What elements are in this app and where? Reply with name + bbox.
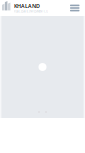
staticText: REAL ESTATE INVESTMENT CO [14,10,48,13]
button[interactable]: KHALAND [0,2,48,14]
staticText: KHALAND [14,2,40,9]
button[interactable]: Menu [70,5,85,11]
